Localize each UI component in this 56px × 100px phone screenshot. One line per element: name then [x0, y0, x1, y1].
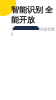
- staticText: 智能识别 全能开放: [11, 5, 53, 25]
- staticText: 支持多种格式，快速智能处理: [11, 27, 55, 36]
